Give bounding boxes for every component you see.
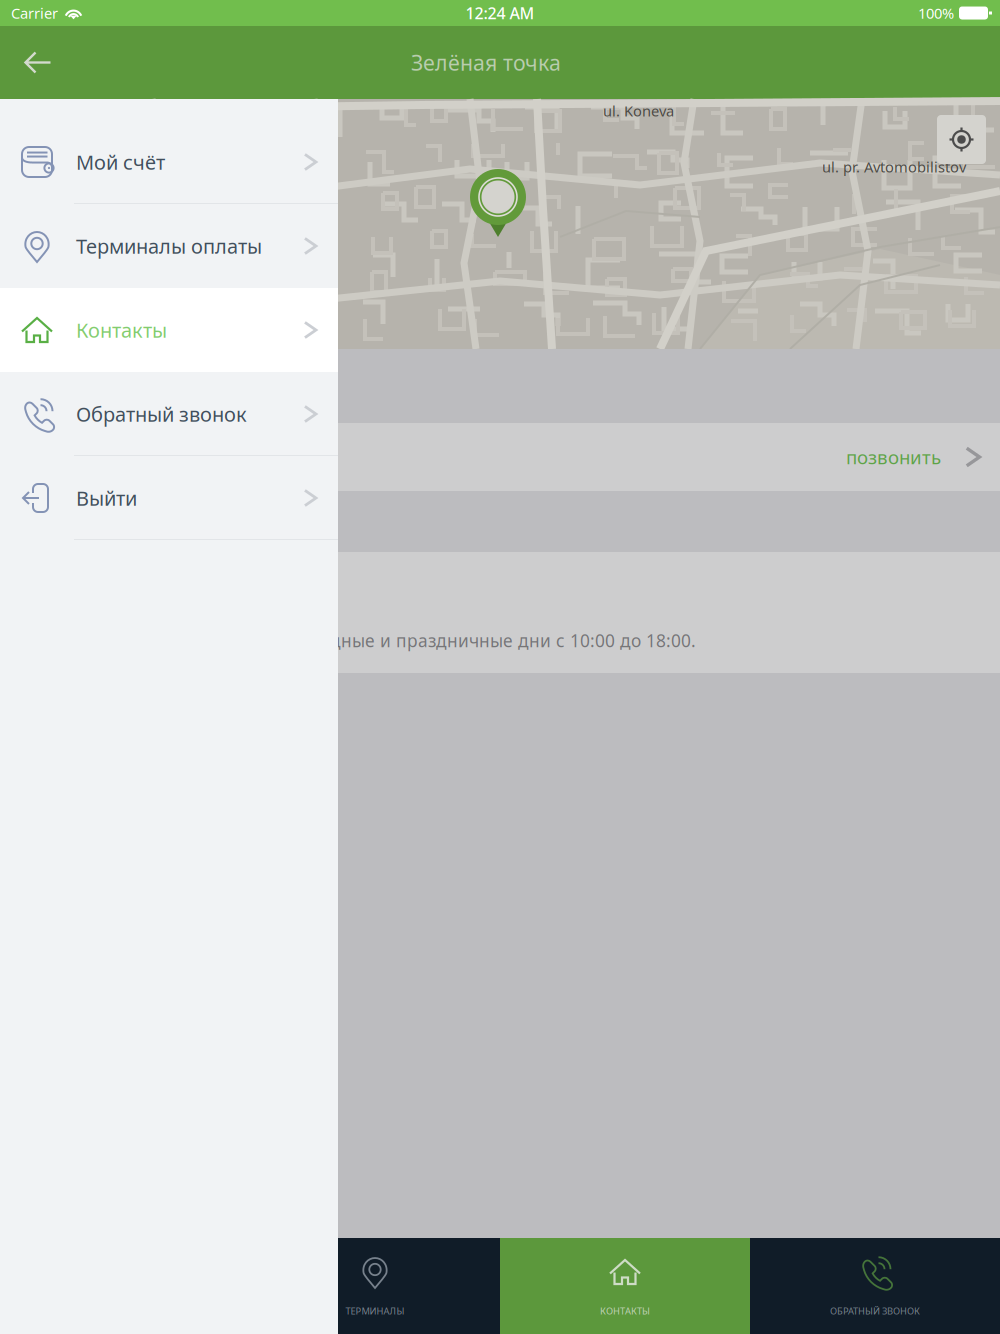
button[interactable]: My location: [937, 115, 986, 164]
staticText: 12:24 AM: [465, 2, 534, 24]
staticText: 100%: [918, 3, 954, 23]
staticText: ul. pr. Avtomobilistov: [822, 157, 966, 176]
button[interactable]: Мой счёт: [0, 120, 338, 204]
staticText: ТЕРМИНАЛЫ: [345, 1305, 404, 1317]
staticText: КОНТАКТЫ: [600, 1305, 650, 1317]
staticText: Обратный звонок: [76, 401, 247, 427]
staticText: Зелёная точка: [411, 48, 561, 77]
staticText: Терминалы оплаты: [76, 233, 262, 259]
staticText: ul. Koneva: [603, 101, 674, 120]
staticText: Выйти: [76, 485, 137, 511]
button[interactable]: Выйти: [0, 456, 338, 540]
button[interactable]: Контакты: [0, 288, 338, 372]
button[interactable]: Терминалы оплаты: [0, 204, 338, 288]
button[interactable]: Back: [0, 26, 76, 99]
button[interactable]: Обратный звонок: [0, 372, 338, 456]
staticText: Carrier: [11, 3, 58, 23]
staticText: дные и праздничные дни с 10:00 до 18:00.: [330, 629, 696, 652]
staticText: Контакты: [76, 317, 167, 343]
button[interactable]: позвонить: [0, 423, 1000, 491]
button[interactable]: ОБРАТНЫЙ ЗВОНОК: [750, 1238, 1000, 1334]
staticText: ОБРАТНЫЙ ЗВОНОК: [830, 1305, 920, 1317]
staticText: позвонить: [846, 445, 941, 469]
button[interactable]: КОНТАКТЫ: [500, 1238, 750, 1334]
button[interactable]: ТЕРМИНАЛЫ: [250, 1238, 500, 1334]
staticText: Мой счёт: [76, 149, 165, 175]
